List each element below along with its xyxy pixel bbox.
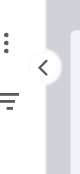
button[interactable]: More options — [0, 26, 14, 60]
button[interactable]: Filter — [0, 88, 22, 114]
button[interactable]: Back — [28, 52, 59, 82]
